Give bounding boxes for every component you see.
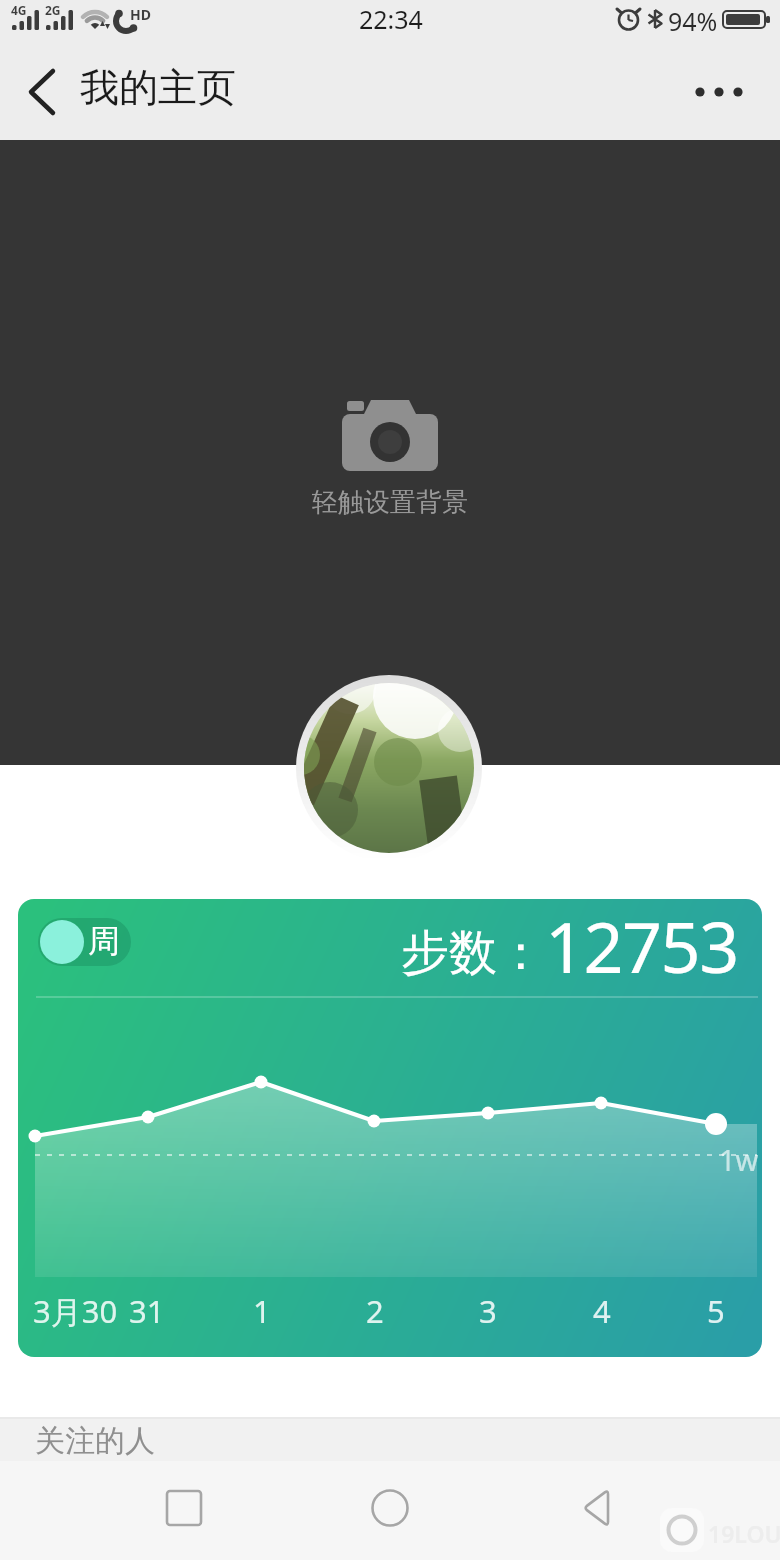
staticText: 4 [593, 1290, 611, 1332]
staticText: 12753 [545, 898, 738, 993]
staticText: 31 [129, 1290, 165, 1332]
staticText: HD [130, 5, 151, 24]
staticText: 3 [479, 1290, 497, 1332]
staticText: 3月30 [33, 1290, 118, 1332]
staticText: 19LOU [708, 1518, 780, 1549]
staticText: 22:34 [359, 2, 423, 36]
staticText: 我的主页 [80, 63, 236, 112]
staticText: 周 [88, 921, 120, 961]
staticText: 步数： [401, 923, 545, 983]
staticText: 94% [668, 4, 718, 38]
staticText: 5 [707, 1290, 725, 1332]
staticText: 轻触设置背景 [312, 486, 468, 519]
staticText: 2 [366, 1290, 384, 1332]
staticText: 关注的人 [35, 1422, 155, 1460]
staticText: 1 [253, 1290, 271, 1332]
staticText: 4G [11, 2, 27, 18]
staticText: 2G [45, 2, 61, 18]
staticText: 1w [719, 1140, 759, 1179]
